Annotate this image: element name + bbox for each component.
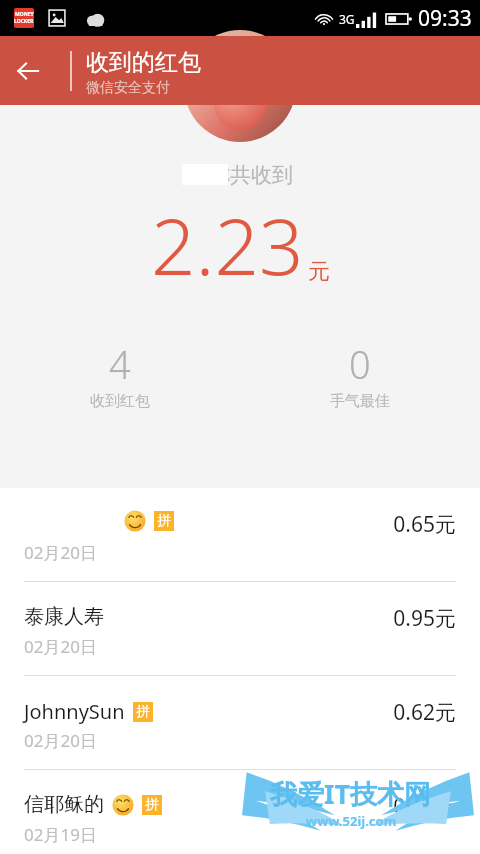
staticText: 我爱IT技术网 xyxy=(270,775,432,812)
staticText: 0.01元 xyxy=(393,792,456,821)
staticText: 拼 xyxy=(136,703,150,721)
button[interactable]: Back xyxy=(0,43,56,99)
staticText: MONEY xyxy=(15,11,34,18)
staticText: www.52ij.com xyxy=(306,812,397,830)
staticText: LOCKER xyxy=(14,18,34,25)
staticText: 昵称共收到 xyxy=(188,162,293,188)
staticText: 手气最佳 xyxy=(330,392,390,411)
staticText: 收到的红包 xyxy=(86,48,201,77)
staticText: 泰康人寿 xyxy=(24,604,104,629)
staticText: 0.95元 xyxy=(393,604,456,633)
button[interactable]: 信耶稣的 xyxy=(0,770,480,854)
button[interactable]: JohnnySun xyxy=(0,676,480,769)
staticText: 02月20日 xyxy=(24,541,97,564)
staticText: 09:33 xyxy=(418,4,472,33)
staticText: 2.23 xyxy=(151,192,304,298)
staticText: JohnnySun xyxy=(24,698,125,725)
staticText: 3G xyxy=(339,11,355,27)
staticText: 4 xyxy=(109,338,131,390)
staticText: 0 xyxy=(349,338,371,390)
staticText: 拼 xyxy=(145,796,159,814)
staticText: 02月20日 xyxy=(24,635,97,658)
staticText: 拼 xyxy=(157,512,171,530)
button[interactable]: 泰康人寿 xyxy=(0,582,480,675)
staticText: 信耶稣的 xyxy=(24,792,104,817)
staticText: 0.65元 xyxy=(393,510,456,539)
staticText: 0.62元 xyxy=(393,698,456,727)
staticText: 元 xyxy=(308,258,330,286)
staticText: 微信安全支付 xyxy=(86,79,170,97)
staticText: 02月20日 xyxy=(24,729,97,752)
button[interactable]: 拼 xyxy=(0,488,480,581)
staticText: 收到红包 xyxy=(90,392,150,411)
staticText: 02月19日 xyxy=(24,823,97,846)
